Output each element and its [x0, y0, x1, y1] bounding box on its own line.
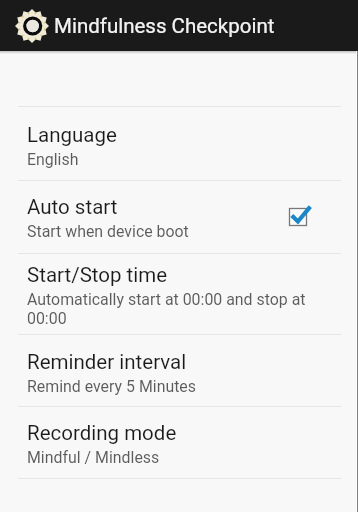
staticText: Start when device boot: [27, 222, 189, 241]
staticText: Mindfulness Checkpoint: [54, 14, 275, 38]
staticText: Recording mode: [27, 421, 177, 445]
staticText: Start/Stop time: [27, 263, 168, 287]
button[interactable]: Language: [0, 107, 358, 180]
button[interactable]: Recording mode: [0, 407, 358, 478]
button[interactable]: Auto start: [0, 181, 358, 253]
staticText: Automatically start at 00:00 and stop at…: [27, 290, 312, 328]
button[interactable]: Reminder interval: [0, 335, 358, 406]
staticText: Reminder interval: [27, 350, 187, 374]
button[interactable]: Start/Stop time: [0, 254, 358, 334]
staticText: Language: [27, 123, 117, 147]
staticText: Auto start: [27, 195, 118, 219]
staticText: Mindful / Mindless: [27, 448, 160, 467]
staticText: Remind every 5 Minutes: [27, 377, 197, 396]
staticText: English: [27, 150, 79, 169]
